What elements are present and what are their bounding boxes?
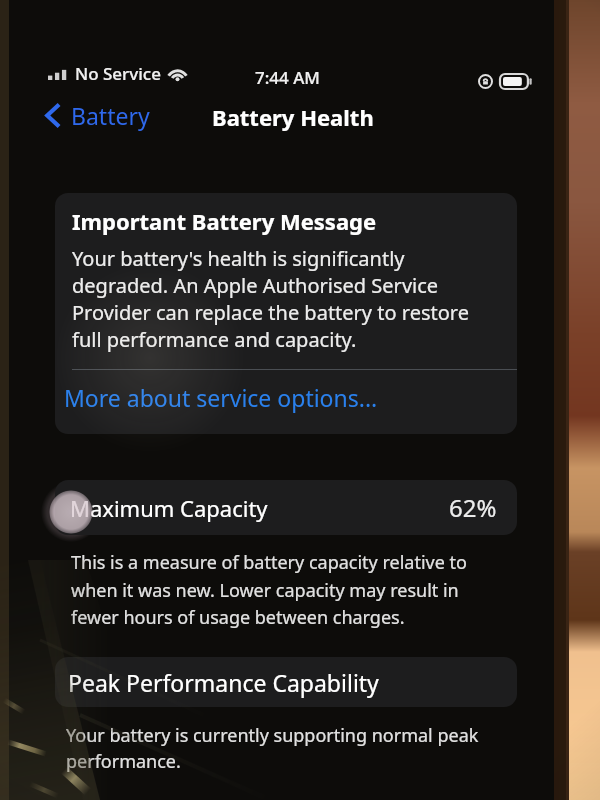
staticText: Battery: [71, 100, 150, 131]
staticText: Important Battery Message: [72, 206, 377, 236]
button[interactable]: Back: [45, 100, 150, 131]
button[interactable]: Maximum Capacity: [55, 480, 517, 535]
other: Back: [45, 101, 61, 130]
staticText: Your battery's health is significantly d…: [72, 245, 480, 353]
button[interactable]: Peak Performance Capability: [55, 657, 517, 707]
button[interactable]: More about service options...: [55, 370, 517, 434]
other: Battery: [500, 74, 531, 89]
staticText: 7:44 AM: [255, 66, 320, 89]
staticText: Your battery is currently supporting nor…: [66, 723, 486, 774]
staticText: Maximum Capacity: [70, 493, 268, 523]
staticText: Battery Health: [212, 102, 374, 132]
staticText: This is a measure of battery capacity re…: [71, 550, 471, 629]
staticText: No Service: [75, 62, 161, 85]
staticText: More about service options...: [64, 382, 378, 413]
other: Rotation lock: [478, 74, 493, 89]
staticText: 62%: [449, 491, 497, 524]
staticText: Peak Performance Capability: [68, 667, 379, 698]
